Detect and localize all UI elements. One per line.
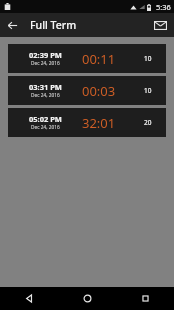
staticText: 05:02 PM [29, 114, 62, 124]
staticText: 20 [144, 118, 152, 127]
staticText: 02:39 PM [29, 50, 62, 60]
staticText: 10 [144, 54, 152, 63]
button[interactable]: 02:39 PM [8, 44, 166, 73]
button[interactable]: Home [58, 287, 116, 310]
staticText: Dec 24, 2016 [31, 60, 60, 67]
staticText: Dec 24, 2016 [31, 92, 60, 99]
button[interactable]: Navigate up [0, 13, 24, 37]
button[interactable]: Email [148, 13, 172, 37]
staticText: 5:36 [156, 2, 171, 12]
staticText: Full Term [30, 18, 77, 32]
button[interactable]: Recent apps [116, 287, 174, 310]
staticText: 32:01 [82, 114, 116, 132]
staticText: 00:11 [82, 50, 116, 68]
staticText: Dec 24, 2016 [31, 124, 60, 131]
staticText: 03:31 PM [29, 82, 62, 92]
button[interactable]: 03:31 PM [8, 76, 166, 105]
button[interactable]: Back [0, 287, 58, 310]
button[interactable]: 05:02 PM [8, 108, 166, 137]
staticText: 10 [144, 86, 152, 95]
staticText: 00:03 [82, 82, 116, 100]
